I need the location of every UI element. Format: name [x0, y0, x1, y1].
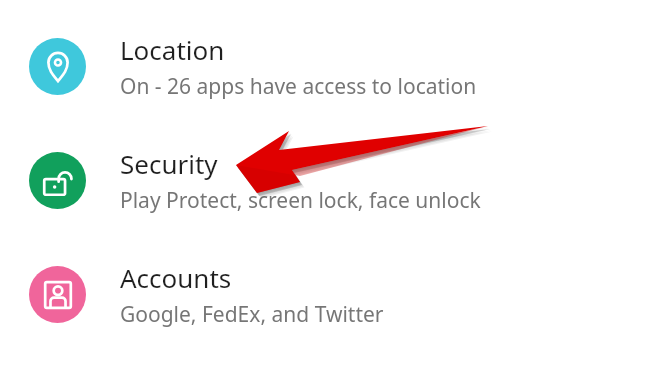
staticText: Security — [120, 146, 218, 181]
other: Accounts — [29, 266, 86, 323]
staticText: On - 26 apps have access to location — [120, 72, 477, 101]
staticText: Play Protect, screen lock, face unlock — [120, 186, 481, 215]
other: Security — [29, 152, 86, 209]
staticText: Location — [120, 32, 225, 67]
button[interactable]: Security — [0, 140, 650, 220]
button[interactable]: Location — [0, 26, 650, 106]
staticText: Google, FedEx, and Twitter — [120, 300, 384, 329]
other: Location — [29, 38, 86, 95]
button[interactable]: Accounts — [0, 254, 650, 334]
staticText: Accounts — [120, 260, 232, 295]
